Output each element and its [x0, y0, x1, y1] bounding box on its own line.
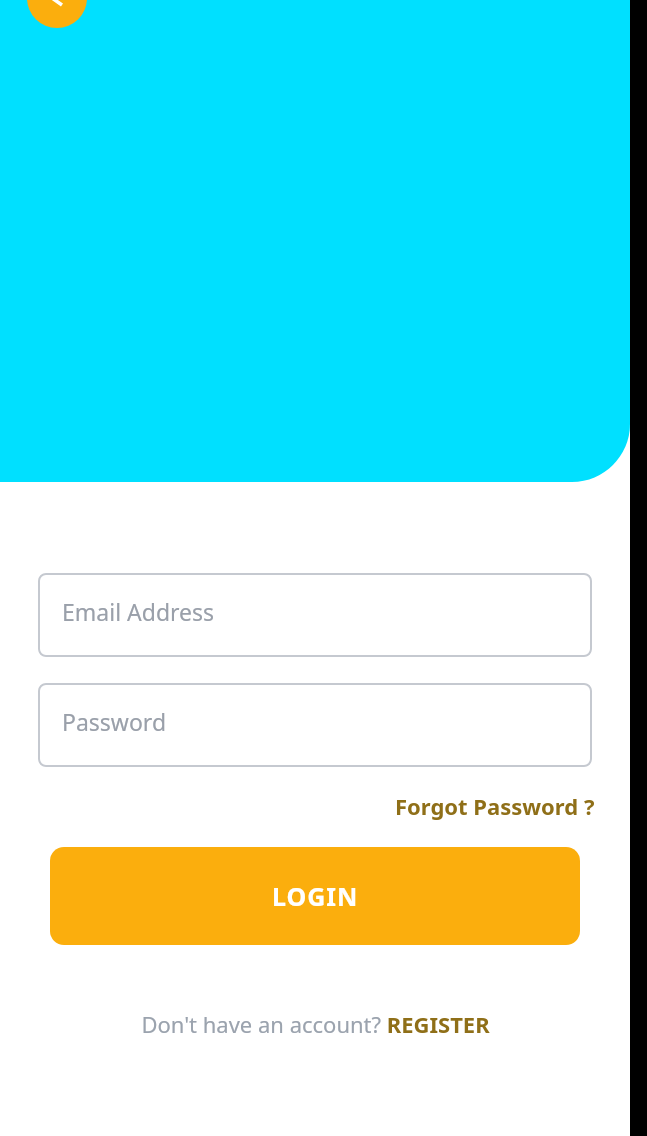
button[interactable]: Email Address	[38, 573, 592, 657]
button[interactable]: Back	[27, 0, 87, 28]
staticText: Forgot Password ?	[395, 791, 595, 821]
staticText: Password	[62, 706, 167, 737]
staticText: LOGIN	[272, 879, 359, 913]
button[interactable]: LOGIN	[50, 847, 580, 945]
button[interactable]: Don't have an account? REGISTER	[135, 1003, 496, 1045]
button[interactable]: Forgot Password ?	[393, 787, 597, 825]
staticText: Email Address	[62, 596, 215, 627]
staticText: Don't have an account? REGISTER	[141, 1009, 490, 1039]
button[interactable]: Password	[38, 683, 592, 767]
